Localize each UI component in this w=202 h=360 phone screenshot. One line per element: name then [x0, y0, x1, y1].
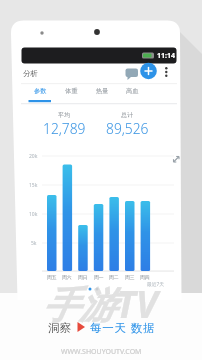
button[interactable]: 每一天 数据 — [63, 316, 183, 339]
staticText: 手游TV — [42, 278, 158, 329]
button[interactable]: 热量 — [42, 85, 162, 97]
button[interactable] — [140, 62, 158, 80]
staticText: 高血 — [126, 87, 139, 95]
staticText: 5k — [31, 240, 37, 247]
button[interactable] — [160, 63, 173, 80]
staticText: 参数 — [34, 87, 47, 95]
staticText: 周一 — [94, 274, 104, 280]
staticText: 分析 — [23, 69, 38, 78]
staticText: 平均 — [58, 111, 70, 119]
button[interactable]: 体重 — [11, 85, 131, 97]
button[interactable] — [122, 64, 142, 82]
staticText: 周日 — [78, 274, 88, 280]
staticText: 体重 — [65, 87, 78, 95]
staticText: 20k — [29, 153, 38, 160]
button[interactable]: 高血 — [72, 85, 192, 97]
button[interactable]: 洞察 — [0, 316, 119, 339]
staticText: 15k — [29, 182, 38, 189]
staticText: 总计 — [121, 111, 133, 119]
staticText: 11:14 — [157, 51, 175, 61]
staticText: 周三 — [125, 274, 135, 280]
staticText: 热量 — [96, 87, 109, 95]
staticText: WWW.SHOUYOUTV.COM — [61, 347, 142, 357]
staticText: 最近7天 — [147, 281, 165, 288]
staticText: 周四 — [140, 274, 150, 280]
staticText: 89,526 — [106, 119, 149, 138]
staticText: 周六 — [62, 274, 72, 280]
staticText: 12,789 — [43, 119, 86, 138]
button[interactable] — [168, 152, 182, 166]
staticText: 周二 — [109, 274, 119, 280]
staticText: 洞察 — [48, 321, 71, 335]
staticText: 10k — [29, 211, 38, 218]
button[interactable]: 参数 — [0, 85, 100, 97]
staticText: 周五 — [47, 274, 57, 280]
staticText: 每一天 数据 — [90, 320, 156, 336]
